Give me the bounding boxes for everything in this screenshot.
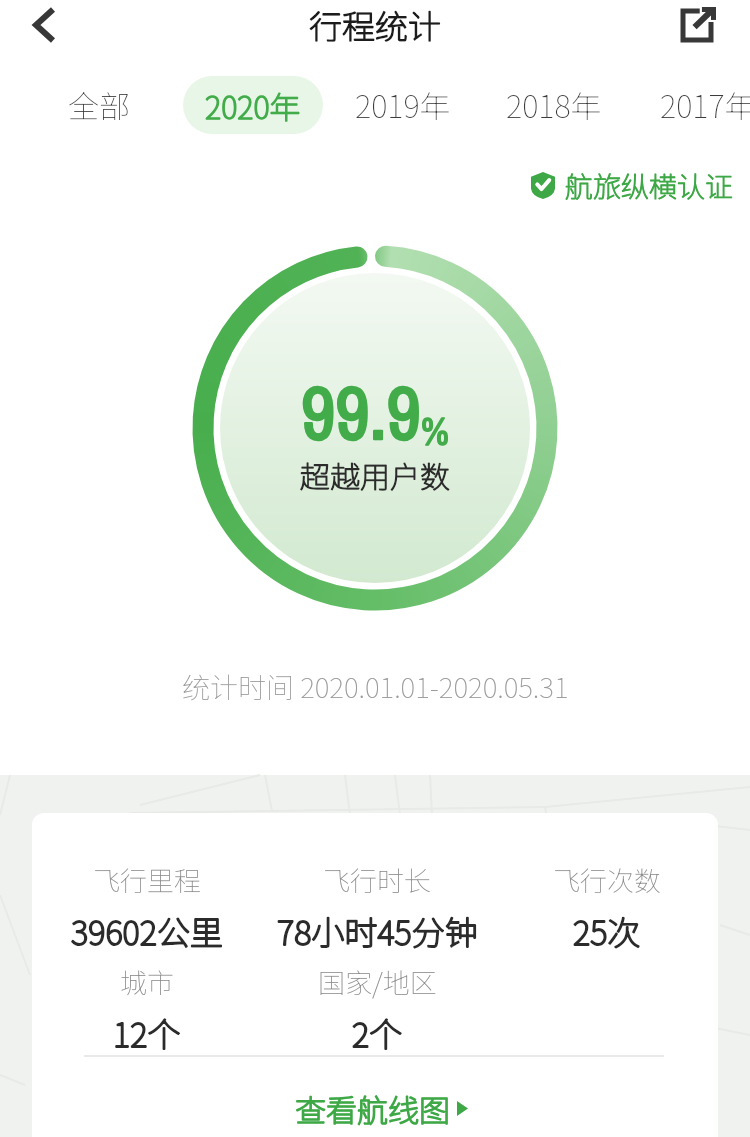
button[interactable]: 2017年	[660, 82, 750, 127]
staticText: 飞行次数	[553, 860, 661, 899]
staticText: 12个	[113, 1009, 181, 1057]
button[interactable]: 全部	[68, 82, 130, 127]
staticText: 78小时45分钟	[277, 907, 478, 955]
staticText: 2个	[352, 1009, 403, 1057]
staticText: 飞行里程	[93, 860, 201, 899]
staticText: 飞行时长	[323, 860, 431, 899]
staticText: 航旅纵横认证	[565, 165, 734, 206]
staticText: 统计时间 2020.01.01-2020.05.31	[182, 666, 569, 707]
button[interactable]: 2020年	[183, 76, 323, 134]
staticText: %	[421, 406, 449, 457]
staticText: 查看航线图	[295, 1086, 450, 1131]
staticText: 39602公里	[71, 907, 223, 955]
staticText: 12个	[113, 1009, 181, 1057]
staticText: 39602公里	[71, 907, 223, 955]
staticText: 2020年	[205, 83, 301, 128]
staticText: 超越用户数	[300, 453, 450, 496]
staticText: 航旅纵横认证	[565, 165, 734, 206]
staticText: 城市	[120, 962, 174, 1001]
staticText: %	[421, 406, 449, 457]
button[interactable]: 2018年	[506, 82, 602, 127]
staticText: 行程统计	[309, 1, 441, 49]
staticText: 2个	[352, 1009, 403, 1057]
staticText: 99.9	[301, 361, 421, 462]
staticText: 行程统计	[309, 1, 441, 49]
button[interactable]	[664, 0, 730, 50]
button[interactable]: 查看航线图	[295, 1086, 468, 1131]
staticText: 查看航线图	[295, 1086, 450, 1131]
staticText: 25次	[573, 907, 641, 955]
staticText: 国家/地区	[318, 962, 437, 1001]
staticText: 25次	[573, 907, 641, 955]
button[interactable]: 2019年	[355, 82, 451, 127]
staticText: 2020年	[205, 83, 301, 128]
button[interactable]	[18, 0, 70, 50]
staticText: 78小时45分钟	[277, 907, 478, 955]
button[interactable]: 航旅纵横认证	[531, 165, 734, 206]
staticText: 99.9	[301, 361, 421, 462]
staticText: 超越用户数	[300, 453, 450, 496]
